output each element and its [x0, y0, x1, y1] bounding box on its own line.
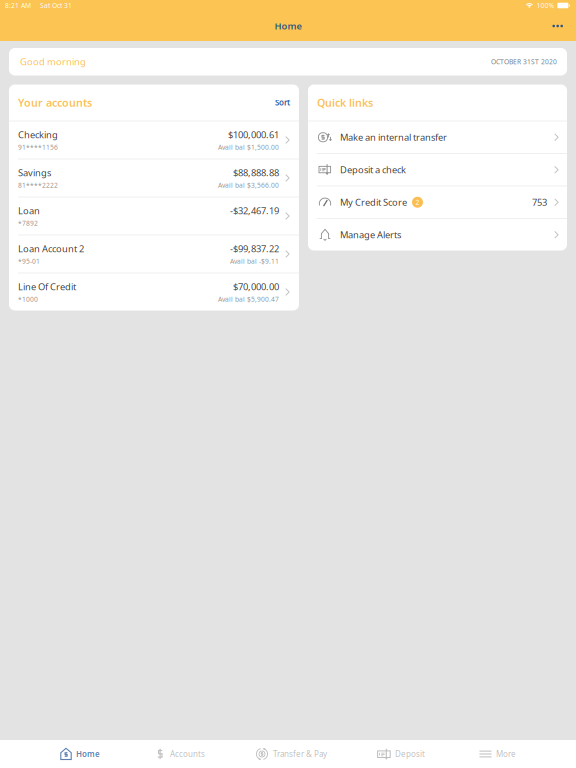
button[interactable]: Make an internal transfer	[308, 121, 567, 153]
button[interactable]: Loan Account 2	[9, 235, 299, 272]
staticText: Make an internal transfer	[340, 131, 447, 143]
staticText: -$32,467.19	[230, 204, 279, 217]
staticText: 81****2222	[18, 181, 58, 190]
staticText: Home	[76, 749, 100, 759]
button[interactable]: Deposit	[377, 740, 425, 768]
staticText: Home	[274, 20, 301, 32]
staticText: Avail bal -$9.11	[230, 257, 279, 266]
button[interactable]: Savings	[9, 159, 299, 196]
staticText: Sort	[275, 97, 290, 108]
staticText: Avail bal $3,566.00	[218, 181, 279, 190]
staticText: More	[496, 749, 516, 759]
staticText: My Credit Score	[340, 196, 407, 208]
staticText: Deposit	[395, 749, 425, 759]
staticText: Avail bal $1,500.00	[218, 143, 279, 152]
staticText: Savings	[18, 166, 51, 179]
button[interactable]: Accounts	[154, 740, 205, 768]
staticText: 100%	[536, 1, 554, 10]
staticText: Loan	[18, 204, 40, 217]
staticText: $88,888.88	[233, 166, 279, 179]
staticText: Line Of Credit	[18, 280, 76, 293]
button[interactable]: Deposit a check	[308, 154, 567, 185]
staticText: Manage Alerts	[340, 229, 401, 241]
button[interactable]: Checking	[9, 121, 299, 158]
button[interactable]: Transfer & Pay	[255, 740, 327, 768]
staticText: 2	[415, 198, 419, 207]
staticText: *7892	[18, 219, 38, 228]
staticText: *95-01	[18, 257, 40, 266]
staticText: Sat Oct 31	[40, 1, 72, 10]
staticText: Avail bal $5,900.47	[218, 295, 279, 304]
staticText: *1000	[18, 295, 38, 304]
staticText: Accounts	[170, 749, 205, 759]
staticText: Checking	[18, 128, 58, 141]
staticText: OCTOBER 31ST 2020	[491, 57, 557, 66]
staticText: Good morning	[20, 56, 86, 68]
button[interactable]: Home	[60, 740, 100, 768]
staticText: Loan Account 2	[18, 242, 84, 255]
staticText: 91****1156	[18, 143, 58, 152]
staticText: Transfer & Pay	[273, 749, 327, 759]
staticText: Your accounts	[18, 95, 92, 110]
button[interactable]: Loan	[9, 197, 299, 234]
staticText: 8:21 AM	[5, 1, 31, 10]
button[interactable]: More	[479, 740, 516, 768]
button[interactable]: My Credit Score	[308, 186, 567, 218]
button[interactable]: More options	[542, 15, 576, 37]
button[interactable]: Manage Alerts	[308, 219, 567, 250]
staticText: $100,000.61	[228, 128, 279, 141]
staticText: $70,000.00	[233, 280, 279, 293]
staticText: Quick links	[317, 95, 373, 110]
staticText: -$99,837.22	[230, 242, 279, 255]
button[interactable]: Sort	[265, 91, 290, 114]
staticText: Deposit a check	[340, 164, 406, 176]
button[interactable]: Line Of Credit	[9, 273, 299, 310]
staticText: 753	[532, 196, 547, 208]
